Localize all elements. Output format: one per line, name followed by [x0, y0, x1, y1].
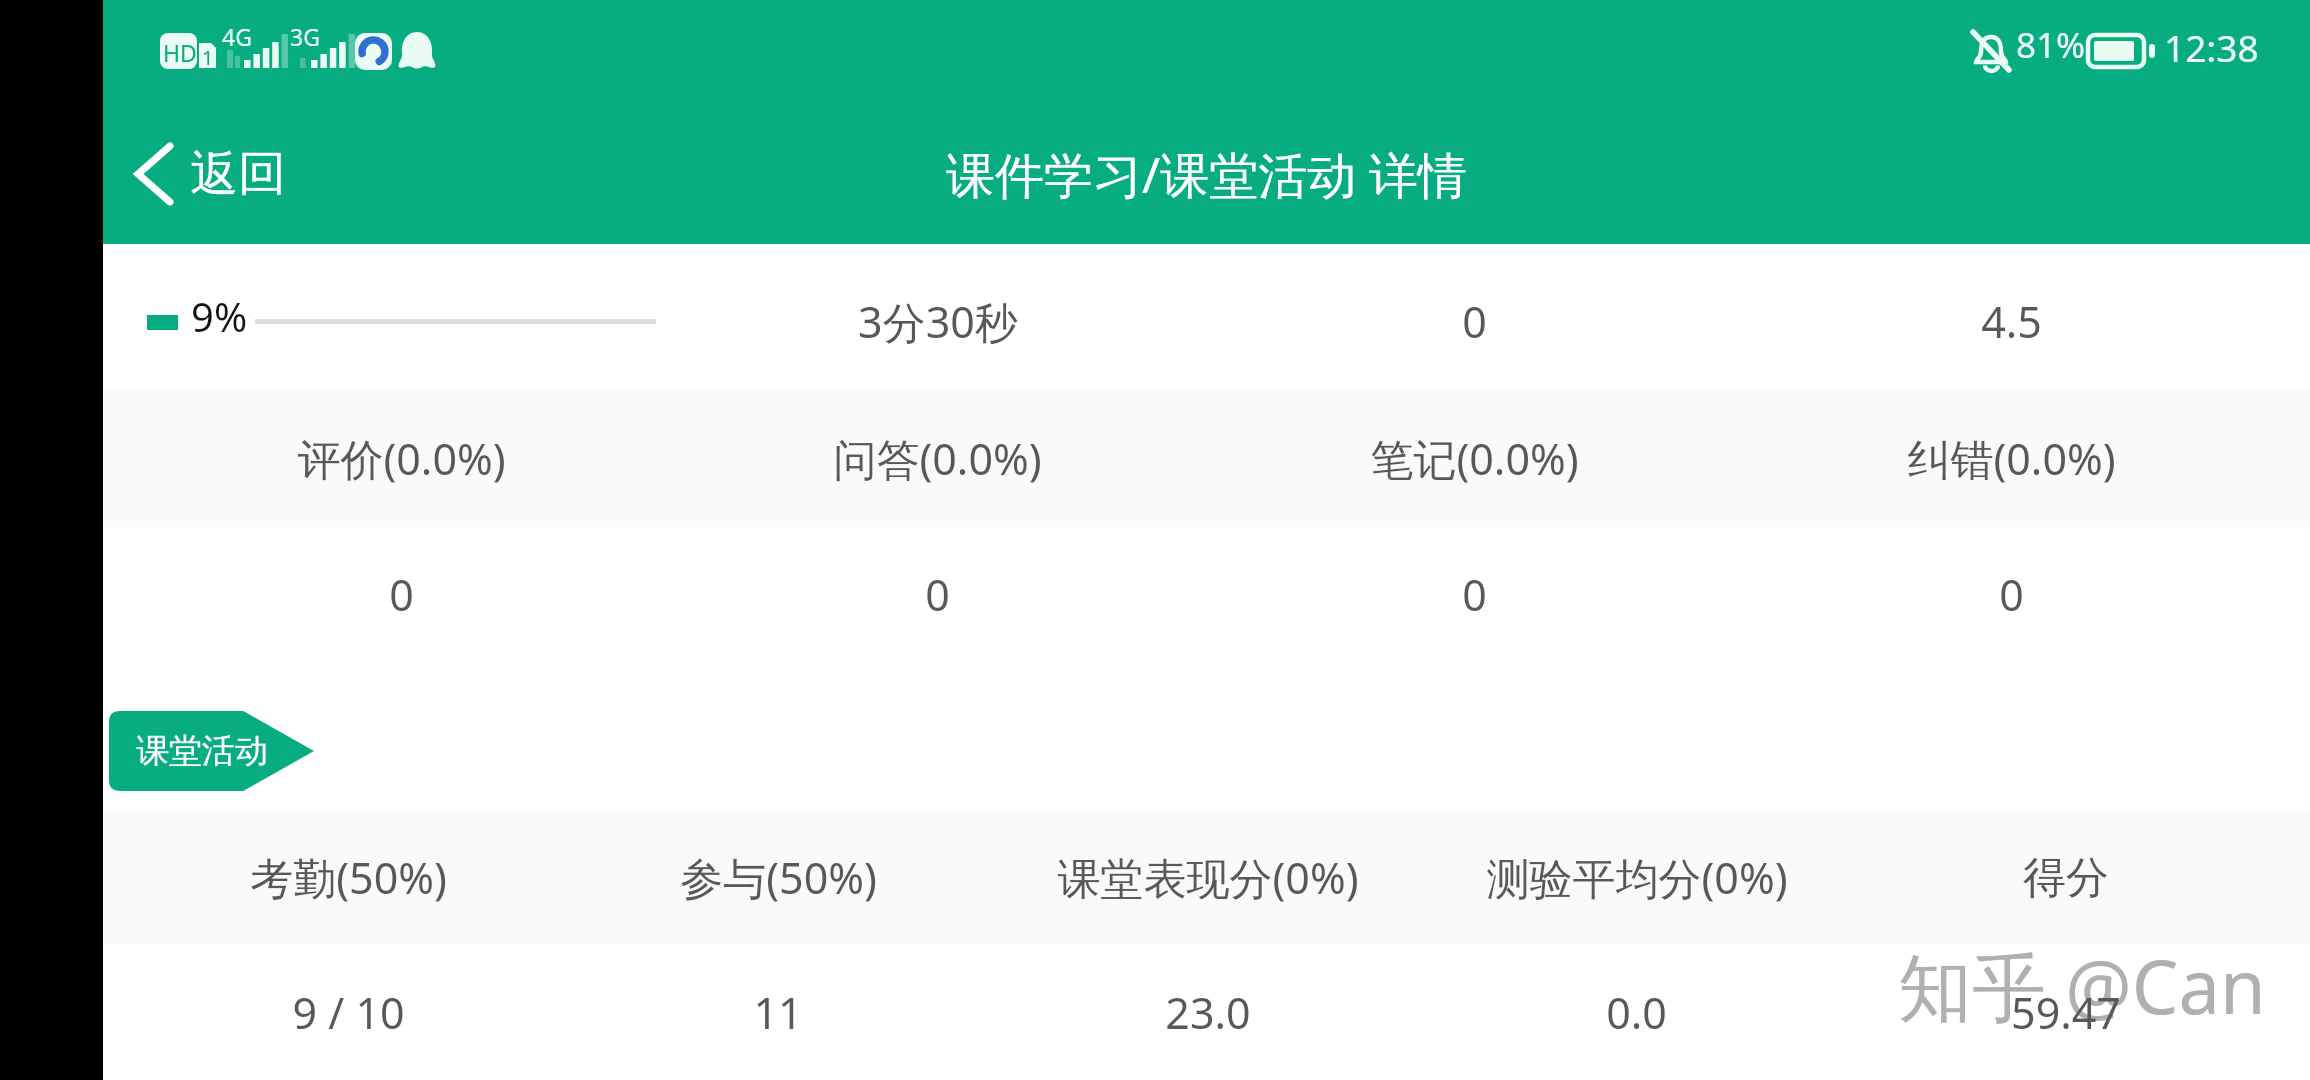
- staticText: 测验平均分(0%): [1486, 848, 1788, 907]
- staticText: 参与(50%): [680, 848, 877, 907]
- staticText: 4G: [222, 21, 252, 52]
- button[interactable]: 0.0: [1422, 944, 1851, 1080]
- button[interactable]: 11: [563, 944, 993, 1080]
- button[interactable]: 评价(0.0%): [133, 390, 669, 527]
- staticText: 课堂表现分(0%): [1057, 848, 1359, 907]
- staticText: 返回: [190, 144, 286, 204]
- staticText: 得分: [2023, 851, 2109, 905]
- button[interactable]: 返回: [103, 134, 306, 214]
- button[interactable]: 课堂活动: [109, 711, 314, 791]
- staticText: 3G: [290, 21, 320, 52]
- button[interactable]: 测验平均分(0%): [1422, 811, 1851, 944]
- staticText: 59.47: [2011, 983, 2121, 1042]
- button[interactable]: 0: [1206, 527, 1743, 662]
- button[interactable]: 0: [1206, 253, 1743, 390]
- button[interactable]: 笔记(0.0%): [1206, 390, 1743, 527]
- button[interactable]: 0: [133, 527, 669, 662]
- button[interactable]: 得分: [1851, 811, 2280, 944]
- button[interactable]: 0: [669, 527, 1206, 662]
- staticText: 课堂活动: [136, 730, 268, 772]
- staticText: 3分30秒: [858, 292, 1018, 351]
- staticText: 9%: [191, 289, 248, 343]
- staticText: 0: [1462, 565, 1487, 624]
- staticText: 1: [202, 44, 214, 71]
- staticText: 4.5: [1981, 292, 2042, 351]
- button[interactable]: 4.5: [1743, 253, 2280, 390]
- button[interactable]: 9 / 10: [133, 944, 563, 1080]
- staticText: 0: [925, 565, 950, 624]
- button[interactable]: 23.0: [993, 944, 1422, 1080]
- button[interactable]: 考勤(50%): [133, 811, 563, 944]
- button[interactable]: 3分30秒: [669, 253, 1206, 390]
- staticText: 笔记(0.0%): [1370, 429, 1579, 488]
- staticText: 知乎 @Can: [1898, 935, 2266, 1036]
- staticText: 0: [389, 565, 414, 624]
- staticText: 9 / 10: [292, 983, 405, 1042]
- staticText: 12:38: [2164, 22, 2259, 72]
- staticText: 0: [1999, 565, 2024, 624]
- staticText: 81%: [2016, 21, 2086, 69]
- button[interactable]: 纠错(0.0%): [1743, 390, 2280, 527]
- staticText: 课件学习/课堂活动 详情: [946, 141, 1467, 208]
- button[interactable]: 0: [1743, 527, 2280, 662]
- staticText: 考勤(50%): [250, 848, 447, 907]
- staticText: 11: [753, 983, 803, 1042]
- button[interactable]: 问答(0.0%): [669, 390, 1206, 527]
- staticText: 问答(0.0%): [833, 429, 1042, 488]
- button[interactable]: 课堂表现分(0%): [993, 811, 1422, 944]
- button[interactable]: 59.47: [1851, 944, 2280, 1080]
- staticText: 纠错(0.0%): [1907, 429, 2116, 488]
- button[interactable]: 9%: [133, 253, 669, 390]
- staticText: 23.0: [1165, 983, 1251, 1042]
- staticText: HD: [163, 37, 197, 68]
- button[interactable]: 参与(50%): [563, 811, 993, 944]
- staticText: 0: [1462, 292, 1487, 351]
- staticText: 0.0: [1606, 983, 1667, 1042]
- staticText: 评价(0.0%): [297, 429, 506, 488]
